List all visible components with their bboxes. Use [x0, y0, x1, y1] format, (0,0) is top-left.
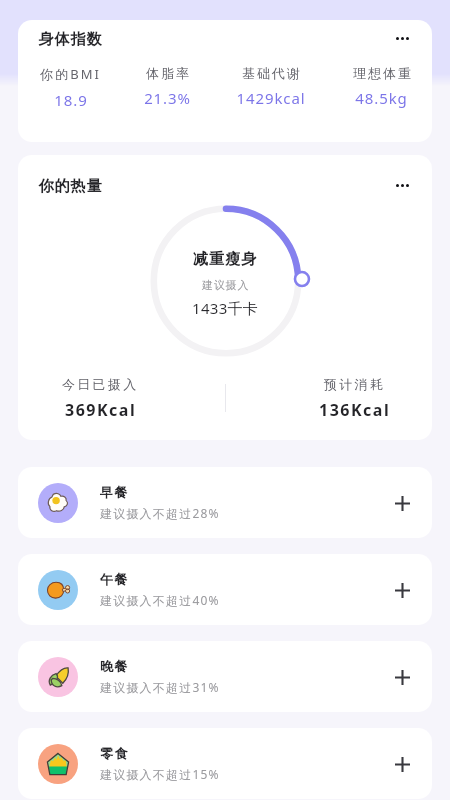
staticText: 早餐	[100, 484, 129, 500]
staticText: 21.3%	[144, 88, 191, 108]
staticText: 零食	[100, 745, 129, 761]
staticText: 今日已摄入	[62, 376, 139, 392]
button[interactable]: Add 早餐	[386, 487, 418, 519]
button[interactable]: 晚餐	[18, 641, 432, 712]
staticText: 建议摄入	[202, 278, 250, 292]
button[interactable]: Add 午餐	[386, 574, 418, 606]
staticText: 体脂率	[145, 65, 190, 81]
staticText: 理想体重	[352, 65, 412, 81]
button[interactable]: More options	[382, 25, 422, 51]
staticText: 369Kcal	[65, 399, 137, 421]
staticText: 身体指数	[38, 30, 102, 49]
staticText: 你的BMI	[40, 65, 101, 83]
staticText: 1433千卡	[192, 298, 259, 318]
staticText: 晚餐	[100, 658, 129, 674]
staticText: 建议摄入不超过15%	[100, 766, 220, 782]
staticText: 建议摄入不超过31%	[100, 679, 220, 695]
button[interactable]: Add 零食	[386, 748, 418, 780]
staticText: 18.9	[54, 90, 88, 110]
button[interactable]: More options	[382, 172, 422, 198]
staticText: 基础代谢	[241, 65, 301, 81]
button[interactable]: 零食	[18, 728, 432, 799]
staticText: 午餐	[100, 571, 129, 587]
staticText: 减重瘦身	[193, 250, 258, 269]
button[interactable]: 早餐	[18, 467, 432, 538]
staticText: 建议摄入不超过40%	[100, 592, 220, 608]
staticText: 你的热量	[38, 177, 102, 196]
staticText: 预计消耗	[324, 376, 386, 392]
staticText: 136Kcal	[319, 399, 391, 421]
staticText: 48.5kg	[355, 88, 408, 108]
button[interactable]: 午餐	[18, 554, 432, 625]
staticText: 1429kcal	[236, 88, 306, 108]
staticText: 建议摄入不超过28%	[100, 505, 220, 521]
button[interactable]: Add 晚餐	[386, 661, 418, 693]
